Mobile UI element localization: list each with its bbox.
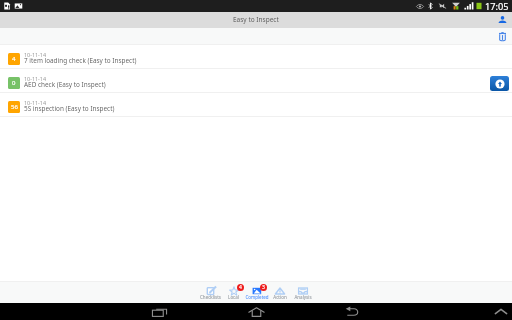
button[interactable]: Back: [342, 305, 363, 318]
staticText: Local: [228, 294, 239, 300]
button[interactable]: Action: [268, 281, 291, 303]
button[interactable]: 4: [222, 281, 245, 303]
staticText: 10-11-14: [24, 75, 46, 82]
staticText: 17:05: [485, 0, 509, 12]
button[interactable]: 0: [0, 69, 512, 93]
button[interactable]: Home: [244, 305, 269, 319]
button[interactable]: Checklists: [199, 281, 222, 303]
staticText: Action: [273, 294, 287, 300]
button[interactable]: 3: [245, 281, 268, 303]
staticText: 0: [12, 79, 16, 87]
button[interactable]: Expand menu: [491, 307, 511, 316]
staticText: Completed: [245, 294, 269, 300]
button[interactable]: 56: [0, 93, 512, 117]
staticText: Easy to Inspect: [233, 15, 279, 24]
button[interactable]: Delete: [492, 28, 512, 45]
staticText: 5S inspection (Easy to Inspect): [24, 104, 115, 113]
staticText: 10-11-14: [24, 51, 46, 58]
staticText: 56: [11, 103, 18, 111]
button[interactable]: Account: [492, 12, 512, 28]
button[interactable]: Recents: [148, 305, 171, 319]
staticText: 3: [262, 284, 265, 291]
staticText: 4: [12, 55, 16, 63]
staticText: 7 item loading check (Easy to Inspect): [24, 56, 137, 65]
button[interactable]: Upload: [490, 76, 509, 91]
staticText: Analysis: [294, 294, 312, 300]
staticText: AED check (Easy to Inspect): [24, 80, 106, 89]
staticText: 10-11-14: [24, 99, 46, 106]
button[interactable]: Analysis: [291, 281, 314, 303]
button[interactable]: 4: [0, 45, 512, 69]
staticText: 4: [239, 284, 242, 291]
staticText: Checklists: [200, 294, 221, 300]
